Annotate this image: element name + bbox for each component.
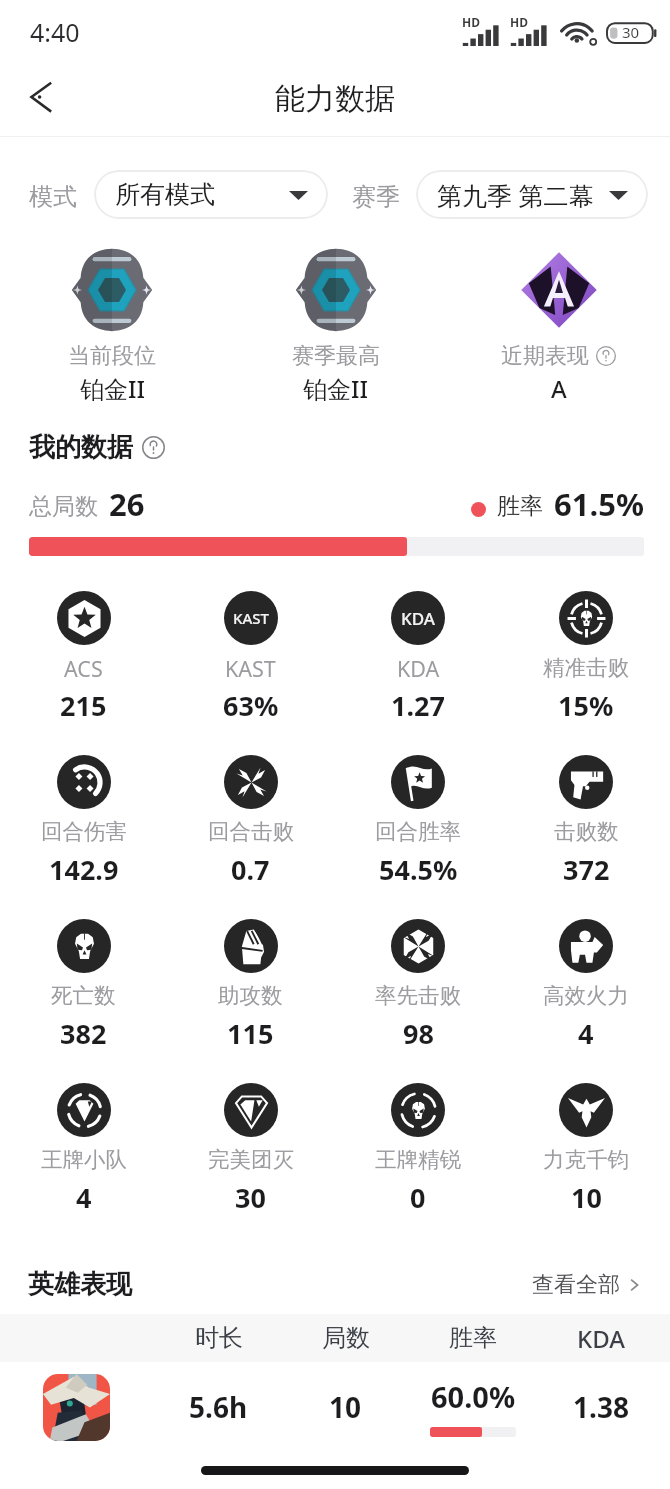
staticText: 0 xyxy=(410,1179,426,1216)
staticText: 10 xyxy=(329,1388,362,1426)
button[interactable]: 查看全部 xyxy=(532,1271,643,1299)
staticText: 胜率 xyxy=(497,492,543,521)
staticText: 215 xyxy=(60,687,107,724)
staticText: KDA xyxy=(577,1322,625,1355)
staticText: 力克千钧 xyxy=(543,1146,629,1173)
staticText: 铂金II xyxy=(303,372,368,405)
staticText: 能力数据 xyxy=(275,80,395,118)
staticText: 死亡数 xyxy=(51,982,116,1009)
button[interactable]: 当前段位 xyxy=(0,246,224,406)
button[interactable]: 回合击败 xyxy=(167,755,334,881)
staticText: 赛季最高 xyxy=(292,342,380,370)
staticText: 4 xyxy=(578,1015,594,1052)
staticText: 回合击败 xyxy=(208,818,294,845)
button[interactable]: KDA xyxy=(334,591,502,717)
button[interactable]: 率先击败 xyxy=(334,919,502,1045)
staticText: 我的数据 xyxy=(29,431,133,464)
staticText: 时长 xyxy=(195,1323,243,1353)
staticText: 115 xyxy=(227,1015,274,1052)
staticText: 完美团灭 xyxy=(208,1146,294,1173)
staticText: 98 xyxy=(403,1015,434,1052)
staticText: HD xyxy=(462,14,480,30)
staticText: 5.6h xyxy=(189,1388,248,1426)
button[interactable]: 第九季 第二幕 xyxy=(416,170,648,219)
staticText: KDA xyxy=(397,654,440,683)
button[interactable]: ACS xyxy=(0,591,167,717)
staticText: 击败数 xyxy=(554,818,619,845)
button[interactable]: 王牌小队 xyxy=(0,1083,167,1209)
button[interactable]: 5.6h xyxy=(0,1362,670,1452)
button[interactable]: 助攻数 xyxy=(167,919,334,1045)
staticText: 4:40 xyxy=(30,15,80,49)
staticText: 4 xyxy=(76,1179,92,1216)
button[interactable]: 高效火力 xyxy=(502,919,670,1045)
staticText: ACS xyxy=(64,654,103,683)
button[interactable]: 所有模式 xyxy=(94,170,328,219)
staticText: 王牌小队 xyxy=(41,1146,127,1173)
staticText: 30 xyxy=(622,22,640,42)
staticText: 助攻数 xyxy=(218,982,283,1009)
staticText: 372 xyxy=(563,851,610,888)
staticText: KAST xyxy=(233,608,269,628)
staticText: 61.5% xyxy=(554,483,644,525)
button[interactable]: 回合伤害 xyxy=(0,755,167,881)
staticText: 382 xyxy=(60,1015,107,1052)
staticText: 局数 xyxy=(322,1323,370,1353)
staticText: 第九季 第二幕 xyxy=(437,178,594,212)
staticText: 回合胜率 xyxy=(375,818,461,845)
button[interactable]: 回合胜率 xyxy=(334,755,502,881)
staticText: 精准击败 xyxy=(543,654,629,681)
staticText: 1.38 xyxy=(573,1388,629,1426)
staticText: 54.5% xyxy=(379,851,458,888)
staticText: KAST xyxy=(225,654,276,683)
staticText: 胜率 xyxy=(449,1323,497,1353)
staticText: 1.27 xyxy=(391,687,445,724)
staticText: 26 xyxy=(109,483,145,525)
button[interactable]: 力克千钧 xyxy=(502,1083,670,1209)
button[interactable]: KAST xyxy=(167,591,334,717)
staticText: 回合伤害 xyxy=(41,818,127,845)
staticText: 30 xyxy=(235,1179,266,1216)
staticText: 赛季 xyxy=(352,182,400,212)
staticText: 近期表现 xyxy=(501,342,589,370)
staticText: 率先击败 xyxy=(375,982,461,1009)
staticText: HD xyxy=(510,14,528,30)
staticText: 查看全部 xyxy=(532,1271,620,1299)
staticText: 高效火力 xyxy=(543,982,629,1009)
staticText: KDA xyxy=(401,607,435,630)
staticText: 10 xyxy=(571,1179,602,1216)
staticText: 总局数 xyxy=(29,492,98,521)
button[interactable]: 死亡数 xyxy=(0,919,167,1045)
staticText: 铂金II xyxy=(80,372,145,405)
staticText: 所有模式 xyxy=(115,179,215,210)
staticText: 63% xyxy=(223,687,279,724)
staticText: 60.0% xyxy=(431,1377,516,1416)
staticText: 模式 xyxy=(29,182,77,212)
button[interactable]: 近期表现 xyxy=(447,246,670,406)
button[interactable]: 王牌精锐 xyxy=(334,1083,502,1209)
button[interactable]: 赛季最高 xyxy=(224,246,447,406)
button[interactable]: 击败数 xyxy=(502,755,670,881)
button[interactable]: 完美团灭 xyxy=(167,1083,334,1209)
staticText: 英雄表现 xyxy=(28,1268,132,1301)
button[interactable]: Back xyxy=(14,68,72,126)
staticText: 15% xyxy=(558,687,614,724)
staticText: 142.9 xyxy=(49,851,119,888)
staticText: 0.7 xyxy=(231,851,270,888)
staticText: A xyxy=(551,372,567,405)
staticText: 王牌精锐 xyxy=(375,1146,461,1173)
staticText: 当前段位 xyxy=(68,342,156,370)
button[interactable]: 精准击败 xyxy=(502,591,670,717)
